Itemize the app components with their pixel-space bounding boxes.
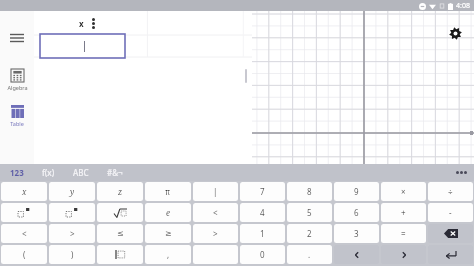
button[interactable]: ) [49, 245, 95, 264]
staticText: 0 [260, 249, 265, 260]
button[interactable]: Enter [428, 245, 473, 264]
button[interactable] [1, 203, 47, 222]
staticText: > [70, 228, 75, 239]
button[interactable]: . [287, 245, 332, 264]
button[interactable]: z [97, 182, 143, 201]
button[interactable]: 1 [240, 224, 285, 243]
staticText: π [165, 186, 171, 197]
button[interactable]: #&¬ [105, 165, 125, 180]
staticText: 2 [307, 228, 312, 239]
staticText: 3 [354, 228, 359, 239]
button[interactable]: 9 [334, 182, 379, 201]
staticText: 4 [260, 207, 265, 218]
button[interactable]: More [452, 164, 470, 181]
button[interactable]: Backspace [428, 224, 473, 243]
staticText: + [401, 207, 406, 218]
staticText: > [213, 228, 218, 239]
button[interactable]: ÷ [428, 182, 473, 201]
staticText: 4:08 [456, 1, 470, 11]
staticText: , [167, 249, 170, 260]
staticText: ÷ [448, 186, 453, 197]
staticText: 9 [354, 186, 359, 197]
button[interactable]: 4 [240, 203, 285, 222]
staticText: Algebra [7, 84, 28, 91]
staticText: z [118, 186, 123, 197]
staticText: | [213, 186, 218, 197]
staticText: y [70, 186, 75, 197]
button[interactable]: 7 [240, 182, 285, 201]
button[interactable]: Menu [4, 25, 30, 51]
staticText: ≤ [117, 229, 124, 238]
button[interactable]: > [49, 224, 95, 243]
staticText: < [22, 228, 27, 239]
button[interactable]: 8 [287, 182, 332, 201]
staticText: 123 [10, 167, 24, 178]
staticText: ABC [73, 167, 89, 178]
staticText: ) [71, 249, 74, 260]
button[interactable] [49, 203, 95, 222]
button[interactable]: 123 [8, 165, 26, 180]
staticText: x [79, 18, 84, 29]
button[interactable]: e [145, 203, 191, 222]
button[interactable]: ≥ [145, 224, 191, 243]
button[interactable]: Right [381, 245, 426, 264]
button[interactable] [40, 34, 125, 58]
button[interactable]: 0 [240, 245, 285, 264]
button[interactable]: ( [1, 245, 47, 264]
button[interactable]: π [145, 182, 191, 201]
button[interactable]: - [428, 203, 473, 222]
staticText: = [401, 228, 406, 239]
button[interactable]: More options [88, 15, 98, 31]
button[interactable]: Settings [446, 24, 464, 42]
button[interactable]: ≤ [97, 224, 143, 243]
staticText: ≥ [165, 229, 172, 238]
staticText: × [401, 186, 406, 197]
button[interactable]: Table [0, 105, 34, 127]
button[interactable] [97, 245, 143, 264]
staticText: x [22, 186, 27, 197]
button[interactable] [193, 245, 238, 264]
staticText: ( [23, 249, 26, 260]
button[interactable]: < [193, 203, 238, 222]
staticText: f(x) [42, 167, 55, 178]
button[interactable]: 2 [287, 224, 332, 243]
button[interactable]: + [381, 203, 426, 222]
button[interactable]: × [381, 182, 426, 201]
staticText: 8 [307, 186, 312, 197]
button[interactable]: , [145, 245, 191, 264]
staticText: < [213, 207, 218, 218]
button[interactable]: y [49, 182, 95, 201]
button[interactable]: Clear [74, 16, 88, 30]
button[interactable]: ABC [71, 165, 91, 180]
staticText: 1 [260, 228, 265, 239]
staticText: 5 [307, 207, 312, 218]
staticText: 7 [260, 186, 265, 197]
button[interactable]: Algebra [0, 69, 34, 91]
button[interactable]: f(x) [40, 165, 57, 180]
button[interactable]: = [381, 224, 426, 243]
staticText: . [308, 249, 311, 260]
staticText: e [166, 207, 170, 218]
button[interactable] [97, 203, 143, 222]
button[interactable]: Left [334, 245, 379, 264]
staticText: Table [10, 120, 24, 127]
button[interactable]: x [1, 182, 47, 201]
staticText: 6 [354, 207, 359, 218]
button[interactable]: > [193, 224, 238, 243]
button[interactable]: 6 [334, 203, 379, 222]
staticText: - [449, 207, 452, 218]
button[interactable]: 3 [334, 224, 379, 243]
button[interactable]: 5 [287, 203, 332, 222]
button[interactable]: < [1, 224, 47, 243]
button[interactable]: | [193, 182, 238, 201]
staticText: #&¬ [107, 167, 123, 178]
